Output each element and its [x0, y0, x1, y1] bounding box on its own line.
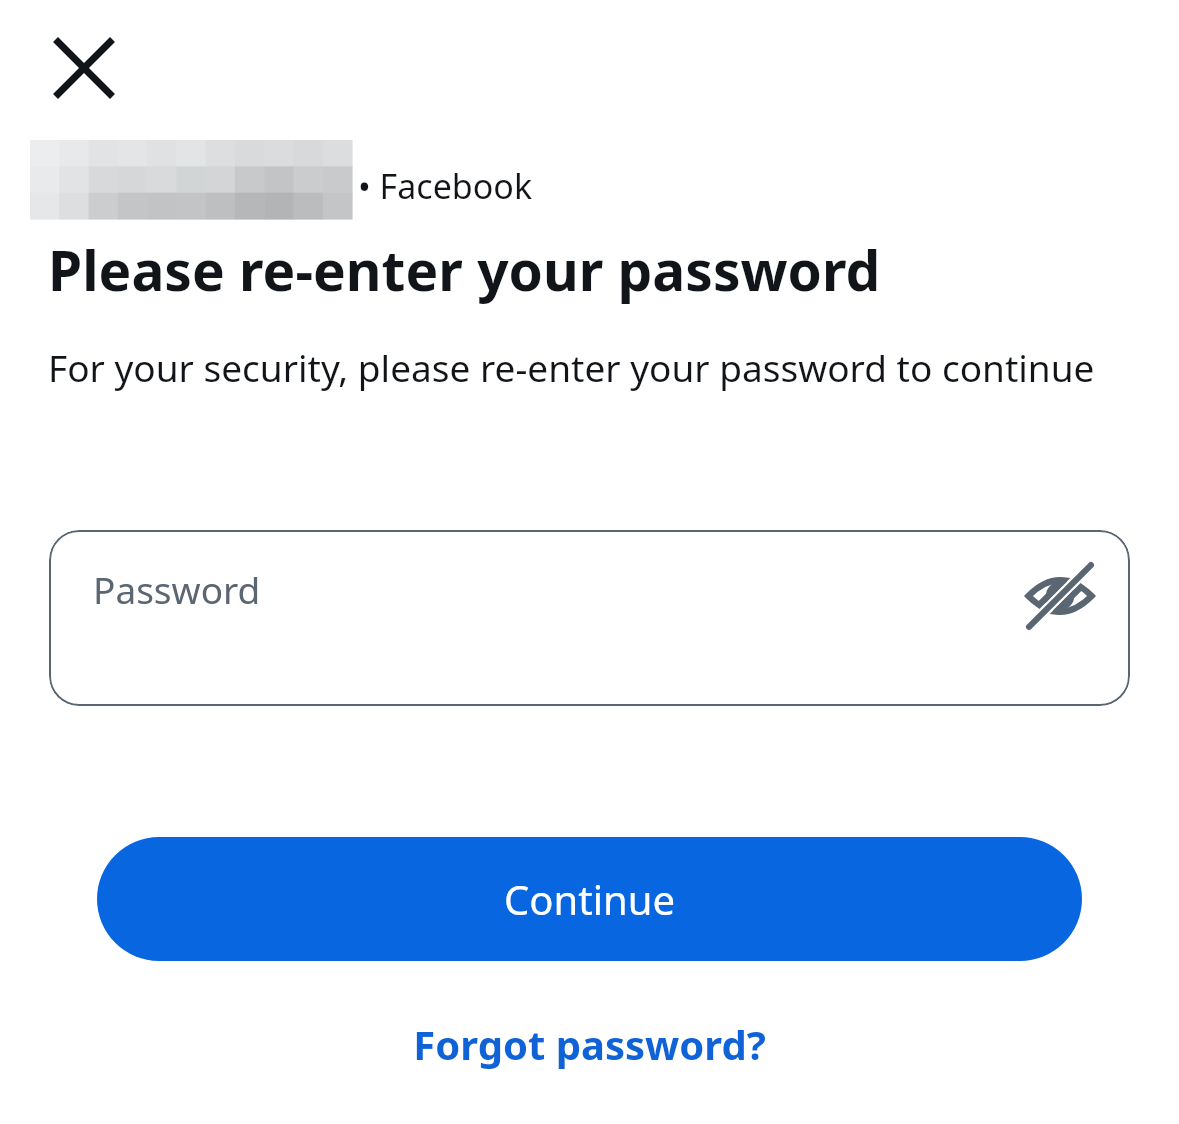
staticText: Password	[93, 564, 261, 614]
staticText: Please re-enter your password	[48, 232, 1138, 307]
staticText: Continue	[504, 872, 675, 926]
button[interactable]: Continue	[97, 837, 1082, 961]
button[interactable]: Show password	[1004, 540, 1116, 652]
button[interactable]: Forgot password?	[0, 1000, 1179, 1088]
staticText: For your security, please re-enter your …	[48, 342, 1113, 392]
staticText: • Facebook	[358, 163, 533, 209]
staticText: Forgot password?	[413, 1017, 766, 1071]
button[interactable]: Password	[49, 530, 1130, 706]
button[interactable]: Close	[36, 20, 131, 115]
